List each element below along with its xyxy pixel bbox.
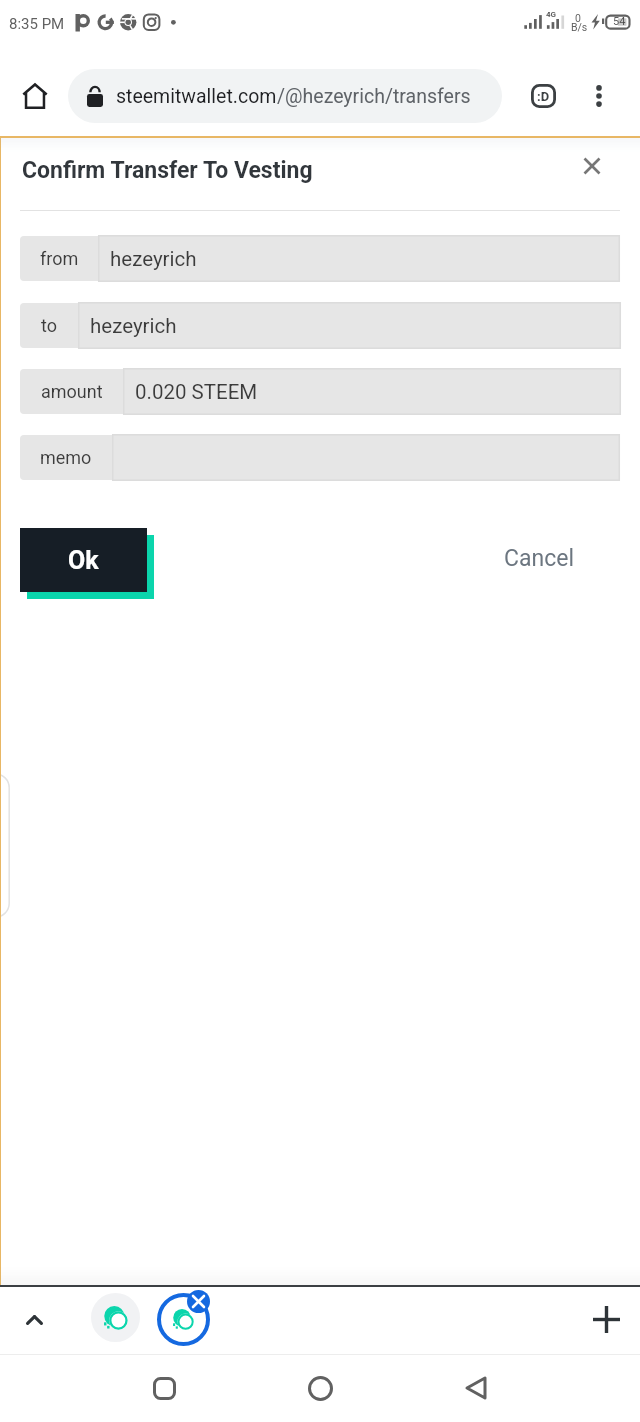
button[interactable]: Close tab — [187, 1290, 210, 1313]
staticText: Ok — [68, 546, 99, 575]
staticText: from — [40, 248, 79, 269]
staticText: :D — [537, 89, 550, 104]
button[interactable]: Tab switcher — [521, 74, 565, 118]
staticText: to — [41, 315, 57, 336]
button[interactable]: Tab steemitwallet — [91, 1293, 140, 1342]
button[interactable]: from field — [98, 235, 620, 282]
button[interactable]: Home — [13, 74, 57, 118]
button[interactable]: steemitwallet.com — [68, 69, 502, 123]
staticText: hezeyrich — [110, 247, 197, 271]
button[interactable]: New tab — [584, 1297, 629, 1342]
staticText: /@hezeyrich/transfers — [277, 85, 471, 108]
staticText: Cancel — [504, 545, 575, 572]
button[interactable]: amount field — [123, 368, 621, 415]
staticText: 0.020 STEEM — [135, 380, 258, 404]
staticText: amount — [41, 381, 103, 402]
staticText: steemitwallet.com — [116, 85, 277, 108]
button[interactable]: Ok — [20, 528, 147, 592]
button[interactable]: Cancel — [484, 533, 595, 584]
staticText: B/s — [571, 21, 588, 33]
button[interactable]: Home — [296, 1364, 344, 1412]
staticText: 54 — [613, 15, 626, 28]
button[interactable]: Expand tab list — [12, 1297, 57, 1342]
staticText: hezeyrich — [90, 314, 177, 338]
staticText: Confirm Transfer To Vesting — [22, 157, 313, 184]
button[interactable]: Current tab — [157, 1293, 210, 1346]
staticText: 4G — [546, 10, 557, 19]
button[interactable]: Close — [576, 150, 608, 182]
staticText: memo — [40, 447, 92, 468]
button[interactable]: Back — [452, 1364, 500, 1412]
staticText: 8:35 PM — [9, 15, 65, 33]
button[interactable]: Recent apps — [140, 1364, 188, 1412]
button[interactable]: More options — [577, 74, 621, 118]
button[interactable]: to field — [78, 302, 621, 349]
staticText: 0 — [575, 12, 581, 24]
